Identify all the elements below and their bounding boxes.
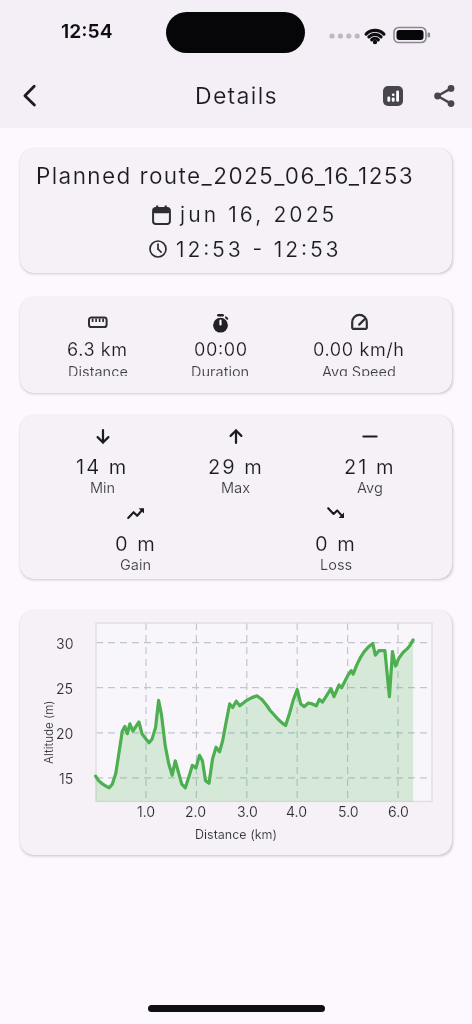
staticText: 30 — [56, 635, 74, 652]
button[interactable]: 6.3 km — [20, 297, 452, 393]
staticText: 14 m — [76, 455, 129, 479]
staticText: 3.0 — [237, 803, 258, 820]
button[interactable]: Planned route_2025_06_16_1253 — [20, 148, 452, 273]
staticText: Min — [90, 479, 116, 497]
staticText: 12:53 - 12:53 — [176, 237, 342, 262]
staticText: 25 — [56, 680, 74, 697]
button[interactable] — [427, 78, 463, 114]
button[interactable] — [10, 76, 50, 116]
staticText: 29 m — [208, 455, 264, 479]
staticText: Duration — [191, 363, 250, 376]
staticText: 00:00 — [194, 339, 248, 361]
staticText: 0 m — [115, 532, 157, 556]
staticText: Avg — [357, 479, 383, 497]
staticText: Max — [221, 479, 251, 497]
staticText: 0.00 km/h — [313, 339, 405, 361]
staticText: jun 16, 2025 — [180, 202, 338, 227]
staticText: 4.0 — [286, 803, 308, 820]
staticText: 1.0 — [137, 803, 156, 820]
staticText: 15 — [59, 770, 74, 787]
staticText: Details — [195, 82, 278, 110]
button[interactable]: 14 m — [20, 415, 452, 579]
staticText: Gain — [120, 556, 152, 574]
staticText: Altitude (m) — [42, 700, 56, 764]
staticText: 20 — [56, 725, 74, 742]
staticText: 5.0 — [338, 803, 359, 820]
button[interactable] — [374, 77, 412, 115]
staticText: 0 m — [315, 532, 357, 556]
button[interactable]: 15 — [20, 610, 452, 855]
staticText: 6.0 — [388, 803, 409, 820]
staticText: 2.0 — [185, 803, 207, 820]
staticText: Loss — [320, 556, 353, 574]
staticText: Avg Speed — [322, 363, 396, 376]
staticText: 12:54 — [61, 20, 113, 43]
staticText: Distance — [68, 363, 128, 376]
staticText: Planned route_2025_06_16_1253 — [36, 162, 415, 189]
staticText: 21 m — [344, 455, 396, 479]
staticText: 6.3 km — [67, 339, 128, 361]
staticText: Distance (km) — [195, 827, 278, 842]
